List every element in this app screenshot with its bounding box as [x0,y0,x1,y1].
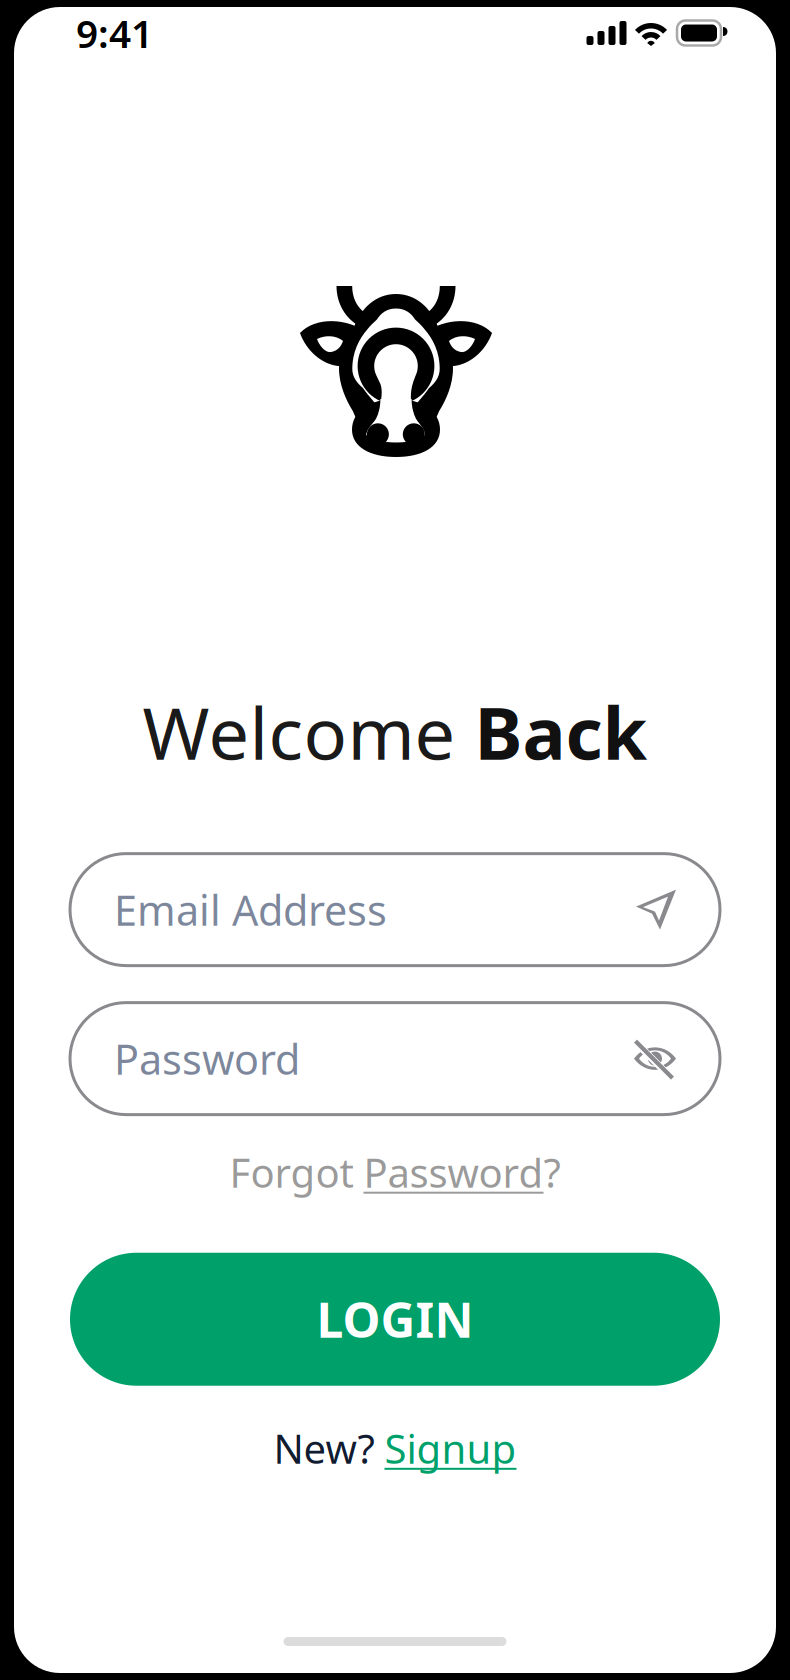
staticText: Welcome [142,684,474,780]
button[interactable]: New? [267,1416,522,1481]
staticText: ? [543,1146,560,1199]
staticText: 9:41 [76,7,153,59]
staticText: Password [363,1146,543,1199]
staticText: Signup [384,1422,516,1475]
button[interactable]: LOGIN [70,1253,720,1386]
staticText: Forgot [229,1146,363,1199]
staticText: Password [114,1031,300,1086]
staticText: Email Address [114,882,387,937]
staticText: LOGIN [316,1287,473,1351]
button[interactable]: Forgot [223,1140,566,1205]
staticText: New? [273,1422,384,1475]
staticText: Back [474,684,647,780]
